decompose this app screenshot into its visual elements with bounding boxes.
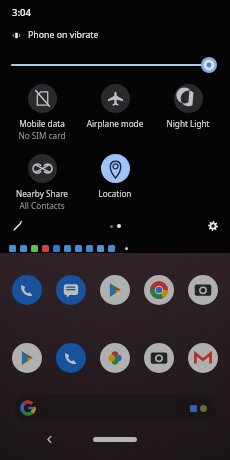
- button[interactable]: Notification 8: [86, 245, 93, 252]
- button[interactable]: Settings: [207, 220, 219, 232]
- button[interactable]: Brightness: [12, 55, 218, 75]
- button[interactable]: PHOTOS: [100, 343, 130, 373]
- button[interactable]: Mobile data: [6, 82, 78, 143]
- button[interactable]: GMAIL: [188, 343, 218, 373]
- button[interactable]: Notification 6: [64, 245, 71, 252]
- button[interactable]: PLAY: [100, 275, 130, 305]
- button[interactable]: Notification 1: [9, 245, 16, 252]
- button[interactable]: Notification 5: [53, 245, 60, 252]
- staticText: Nearby Share: [6, 188, 78, 199]
- staticText: Location: [79, 188, 151, 199]
- button[interactable]: Notification 10: [108, 245, 115, 252]
- button[interactable]: PHONE: [56, 343, 86, 373]
- staticText: 3:04: [12, 6, 31, 19]
- staticText: Phone on vibrate: [28, 29, 99, 41]
- button[interactable]: Night Light: [152, 82, 224, 131]
- button[interactable]: Notification 2: [20, 245, 27, 252]
- staticText: Mobile data: [6, 118, 78, 129]
- button[interactable]: CHROME: [144, 275, 174, 305]
- button[interactable]: Notification 3: [31, 245, 38, 252]
- button[interactable]: Notification 9: [97, 245, 104, 252]
- button[interactable]: Phone on vibrate: [0, 24, 230, 46]
- staticText: All Contacts: [6, 200, 78, 211]
- button[interactable]: Notification 7: [75, 245, 82, 252]
- button[interactable]: Airplane mode: [79, 82, 151, 131]
- button[interactable]: MESSAGES: [56, 275, 86, 305]
- button[interactable]: CAMERA: [188, 275, 218, 305]
- button[interactable]: Search: [14, 395, 216, 421]
- button[interactable]: Back: [44, 434, 55, 445]
- button[interactable]: Location: [79, 152, 151, 201]
- button[interactable]: Edit tiles: [11, 220, 24, 233]
- staticText: No SIM card: [6, 130, 78, 141]
- button[interactable]: PHONE: [12, 275, 42, 305]
- button[interactable]: CAMERA: [144, 343, 174, 373]
- button[interactable]: Notification 4: [42, 245, 49, 252]
- button[interactable]: Nearby Share: [6, 152, 78, 213]
- staticText: Night Light: [152, 118, 224, 129]
- staticText: Airplane mode: [79, 118, 151, 129]
- button[interactable]: PLAY: [12, 343, 42, 373]
- button[interactable]: Home: [93, 437, 137, 442]
